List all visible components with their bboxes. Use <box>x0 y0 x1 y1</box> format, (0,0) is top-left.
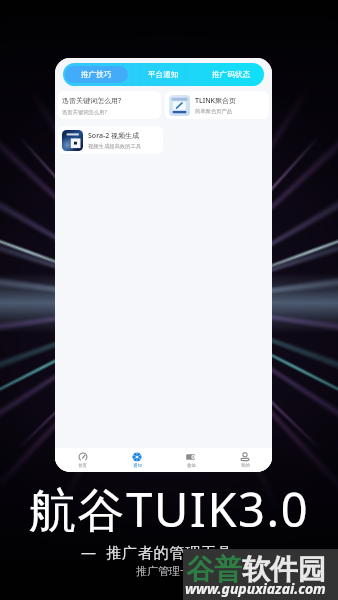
staticText: 谷普 <box>186 552 242 587</box>
button[interactable]: Notifications <box>110 448 164 472</box>
button[interactable]: TLINK聚合页 <box>165 91 269 119</box>
staticText: 航谷TUIK3.0 <box>29 477 310 541</box>
button[interactable]: 推广技巧 <box>65 66 128 83</box>
staticText: 软件园 <box>242 552 326 587</box>
staticText: 平台通知 <box>148 70 179 80</box>
staticText: 通知 <box>133 463 142 469</box>
staticText: Sora-2 视频生成 <box>88 131 140 141</box>
staticText: 推广码状态 <box>212 70 250 80</box>
staticText: 我的 <box>241 463 250 469</box>
staticText: 迅雷关键词怎么用? <box>62 96 122 106</box>
button[interactable]: Home <box>55 448 110 472</box>
button[interactable]: 推广码状态 <box>199 66 262 83</box>
button[interactable]: Profile <box>218 448 272 472</box>
staticText: 迅雷关键词怎么用? <box>62 108 107 115</box>
button[interactable]: 迅雷关键词怎么用? <box>58 91 161 119</box>
staticText: TLINK聚合页 <box>195 96 237 106</box>
staticText: 推广技巧 <box>81 70 112 80</box>
staticText: 收益 <box>187 463 196 469</box>
button[interactable]: Sora-2 视频生成 <box>58 126 163 154</box>
staticText: 视频生成超高效的工具 <box>88 143 141 150</box>
staticText: 简单聚合页产品 <box>195 108 233 115</box>
button[interactable]: Earnings <box>164 448 218 472</box>
staticText: — 推广者的管理工具 — <box>81 542 258 562</box>
button[interactable]: 平台通知 <box>132 66 195 83</box>
staticText: www.gupuxiazai.com <box>185 579 326 598</box>
staticText: 推广管理一站 <box>136 564 202 578</box>
staticText: 首页 <box>78 463 87 469</box>
